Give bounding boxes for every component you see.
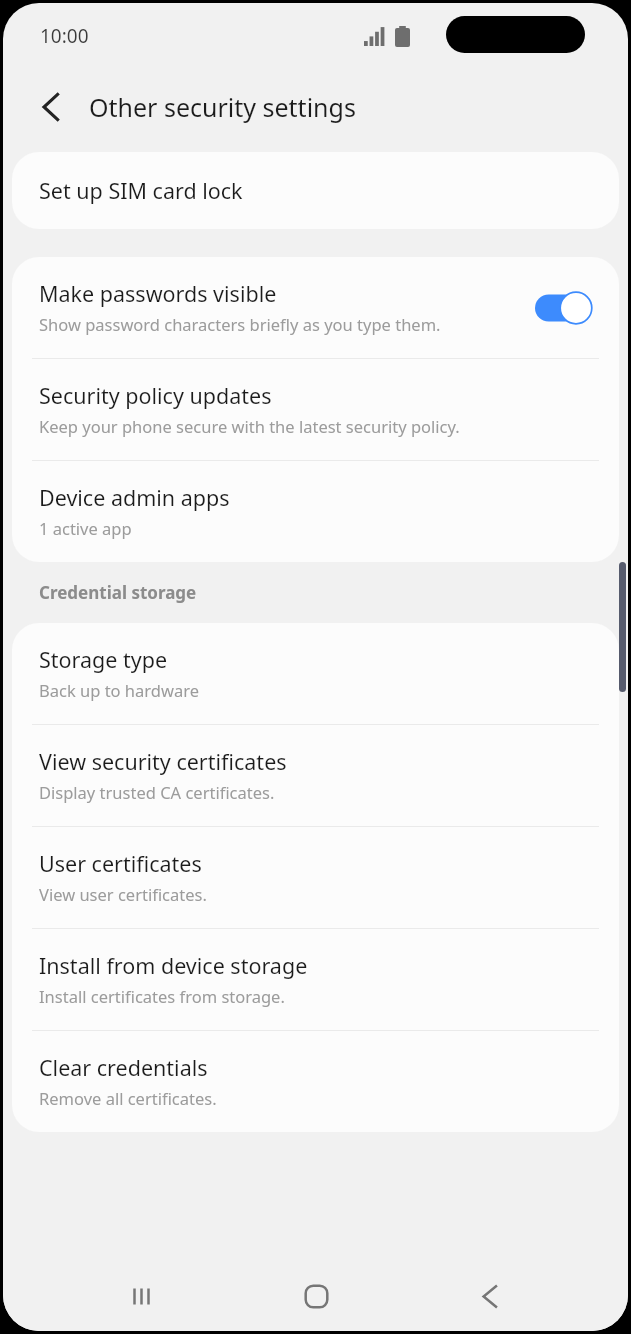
other: Make passwords visible toggle (535, 290, 593, 326)
staticText: Clear credentials (39, 1053, 208, 1082)
staticText: View user certificates. (39, 883, 207, 905)
staticText: Install certificates from storage. (39, 985, 285, 1007)
staticText: Remove all certificates. (39, 1087, 217, 1109)
button[interactable]: Make passwords visible (12, 257, 619, 358)
button[interactable]: Security policy updates (12, 359, 619, 460)
staticText: Storage type (39, 645, 168, 674)
staticText: Security policy updates (39, 381, 272, 410)
button[interactable]: Back (453, 1262, 527, 1331)
staticText: Make passwords visible (39, 279, 277, 308)
staticText: Device admin apps (39, 483, 230, 512)
button[interactable]: User certificates (12, 827, 619, 928)
button[interactable]: Navigate up (23, 79, 79, 135)
staticText: User certificates (39, 849, 202, 878)
button[interactable]: Clear credentials (12, 1031, 619, 1132)
button[interactable]: Set up SIM card lock (12, 152, 619, 229)
staticText: Other security settings (89, 90, 356, 124)
button[interactable]: View security certificates (12, 725, 619, 826)
button[interactable]: Home (279, 1262, 353, 1331)
staticText: Keep your phone secure with the latest s… (39, 415, 460, 437)
staticText: Credential storage (39, 581, 197, 604)
staticText: Back up to hardware (39, 679, 199, 701)
button[interactable]: Recent apps (104, 1262, 178, 1331)
button[interactable]: Device admin apps (12, 461, 619, 562)
staticText: Display trusted CA certificates. (39, 781, 275, 803)
staticText: 10:00 (40, 23, 89, 49)
button[interactable]: Install from device storage (12, 929, 619, 1030)
staticText: 1 active app (39, 517, 132, 539)
staticText: Show password characters briefly as you … (39, 313, 441, 335)
staticText: View security certificates (39, 747, 287, 776)
staticText: Set up SIM card lock (39, 176, 243, 205)
button[interactable]: Storage type (12, 623, 619, 724)
staticText: Install from device storage (39, 951, 308, 980)
